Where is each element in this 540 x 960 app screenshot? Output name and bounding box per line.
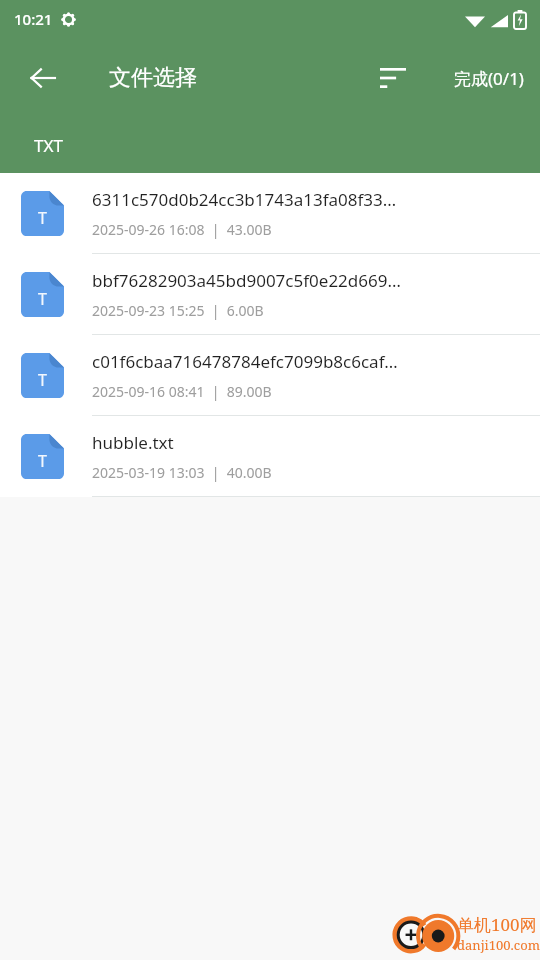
staticText: T bbox=[38, 450, 47, 472]
button[interactable]: Sort bbox=[369, 54, 417, 102]
button[interactable]: 完成(0/1) bbox=[438, 50, 540, 106]
staticText: 单机100网 bbox=[457, 913, 537, 936]
button[interactable]: Back bbox=[18, 53, 68, 103]
button[interactable]: TXT bbox=[0, 118, 63, 173]
staticText: 完成(0/1) bbox=[454, 67, 524, 90]
staticText: 文件选择 bbox=[109, 64, 197, 92]
staticText: T bbox=[38, 288, 47, 310]
staticText: 2025-09-26 16:08 | 43.00B bbox=[92, 220, 272, 239]
staticText: T bbox=[38, 369, 47, 391]
button[interactable]: T bbox=[0, 416, 540, 497]
button[interactable]: T bbox=[0, 173, 540, 254]
staticText: bbf76282903a45bd9007c5f0e22d669… bbox=[92, 269, 401, 292]
staticText: T bbox=[38, 207, 47, 229]
staticText: c01f6cbaa716478784efc7099b8c6caf… bbox=[92, 350, 398, 373]
staticText: danji100.com bbox=[457, 936, 540, 954]
staticText: 2025-09-16 08:41 | 89.00B bbox=[92, 382, 272, 401]
button[interactable]: T bbox=[0, 254, 540, 335]
staticText: 6311c570d0b24cc3b1743a13fa08f33… bbox=[92, 188, 397, 211]
staticText: TXT bbox=[34, 134, 63, 157]
staticText: hubble.txt bbox=[92, 431, 174, 454]
button[interactable]: T bbox=[0, 335, 540, 416]
staticText: 2025-09-23 15:25 | 6.00B bbox=[92, 301, 264, 320]
staticText: 2025-03-19 13:03 | 40.00B bbox=[92, 463, 272, 482]
staticText: 10:21 bbox=[14, 9, 53, 29]
